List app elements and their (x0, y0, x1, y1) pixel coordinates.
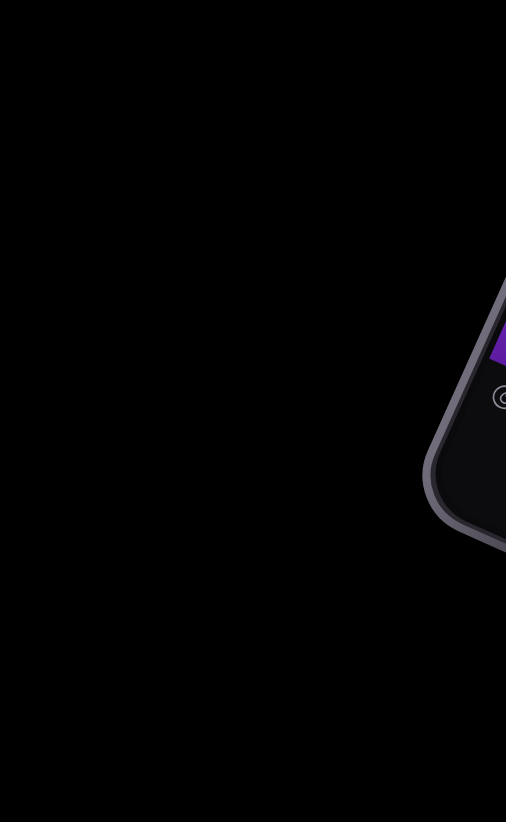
button[interactable]: Messenger chat screen (0, 0, 506, 822)
